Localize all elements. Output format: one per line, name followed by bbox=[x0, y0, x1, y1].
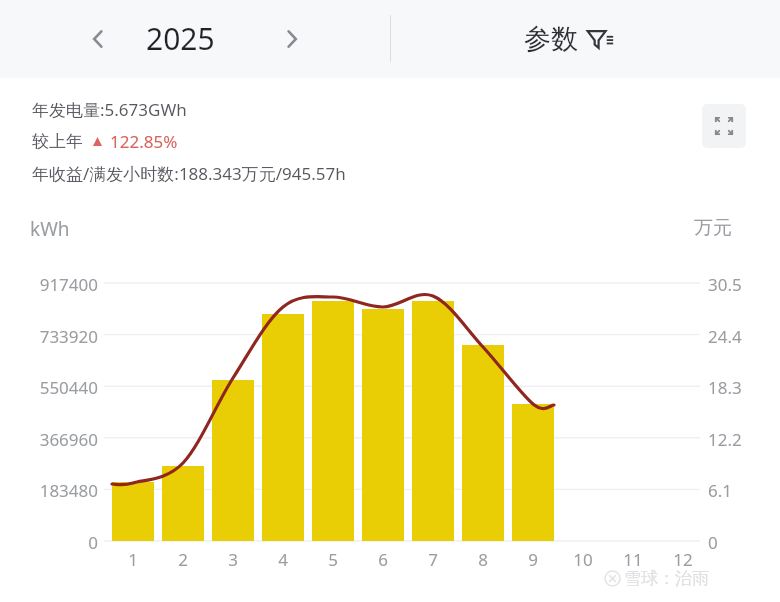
staticText: 24.4 bbox=[708, 325, 742, 348]
staticText: 550440 bbox=[0, 376, 98, 399]
staticText: 917400 bbox=[0, 273, 98, 296]
button[interactable]: Previous year bbox=[78, 19, 118, 59]
staticText: 7 bbox=[413, 548, 453, 571]
staticText: 万元 bbox=[694, 216, 732, 240]
staticText: kWh bbox=[30, 216, 70, 242]
staticText: 年收益/满发小时数:188.343万元/945.57h bbox=[32, 162, 346, 185]
staticText: 3 bbox=[213, 548, 253, 571]
staticText: 8 bbox=[463, 548, 503, 571]
staticText: 9 bbox=[513, 548, 553, 571]
staticText: 2025 bbox=[146, 18, 215, 59]
staticText: 4 bbox=[263, 548, 303, 571]
button[interactable]: Next year bbox=[272, 19, 312, 59]
staticText: 参数 bbox=[524, 22, 578, 56]
staticText: 366960 bbox=[0, 428, 98, 451]
staticText: 6.1 bbox=[708, 479, 733, 502]
staticText: 11 bbox=[613, 548, 653, 571]
staticText: 0 bbox=[0, 531, 98, 554]
staticText: 733920 bbox=[0, 325, 98, 348]
staticText: 年发电量:5.673GWh bbox=[32, 98, 187, 121]
staticText: 183480 bbox=[0, 479, 98, 502]
staticText: 18.3 bbox=[708, 376, 742, 399]
staticText: 122.85% bbox=[110, 130, 178, 153]
button[interactable]: 参数 bbox=[524, 16, 614, 62]
staticText: 较上年 bbox=[32, 131, 83, 152]
staticText: 30.5 bbox=[708, 273, 742, 296]
staticText: 0 bbox=[708, 531, 718, 554]
staticText: 12 bbox=[663, 548, 703, 571]
staticText: 5 bbox=[313, 548, 353, 571]
staticText: 10 bbox=[563, 548, 603, 571]
button[interactable]: Fullscreen bbox=[702, 104, 746, 148]
staticText: 1 bbox=[113, 548, 153, 571]
staticText: 12.2 bbox=[708, 428, 742, 451]
staticText: 雪球：治雨 bbox=[624, 568, 709, 589]
staticText: 6 bbox=[363, 548, 403, 571]
staticText: 2 bbox=[163, 548, 203, 571]
